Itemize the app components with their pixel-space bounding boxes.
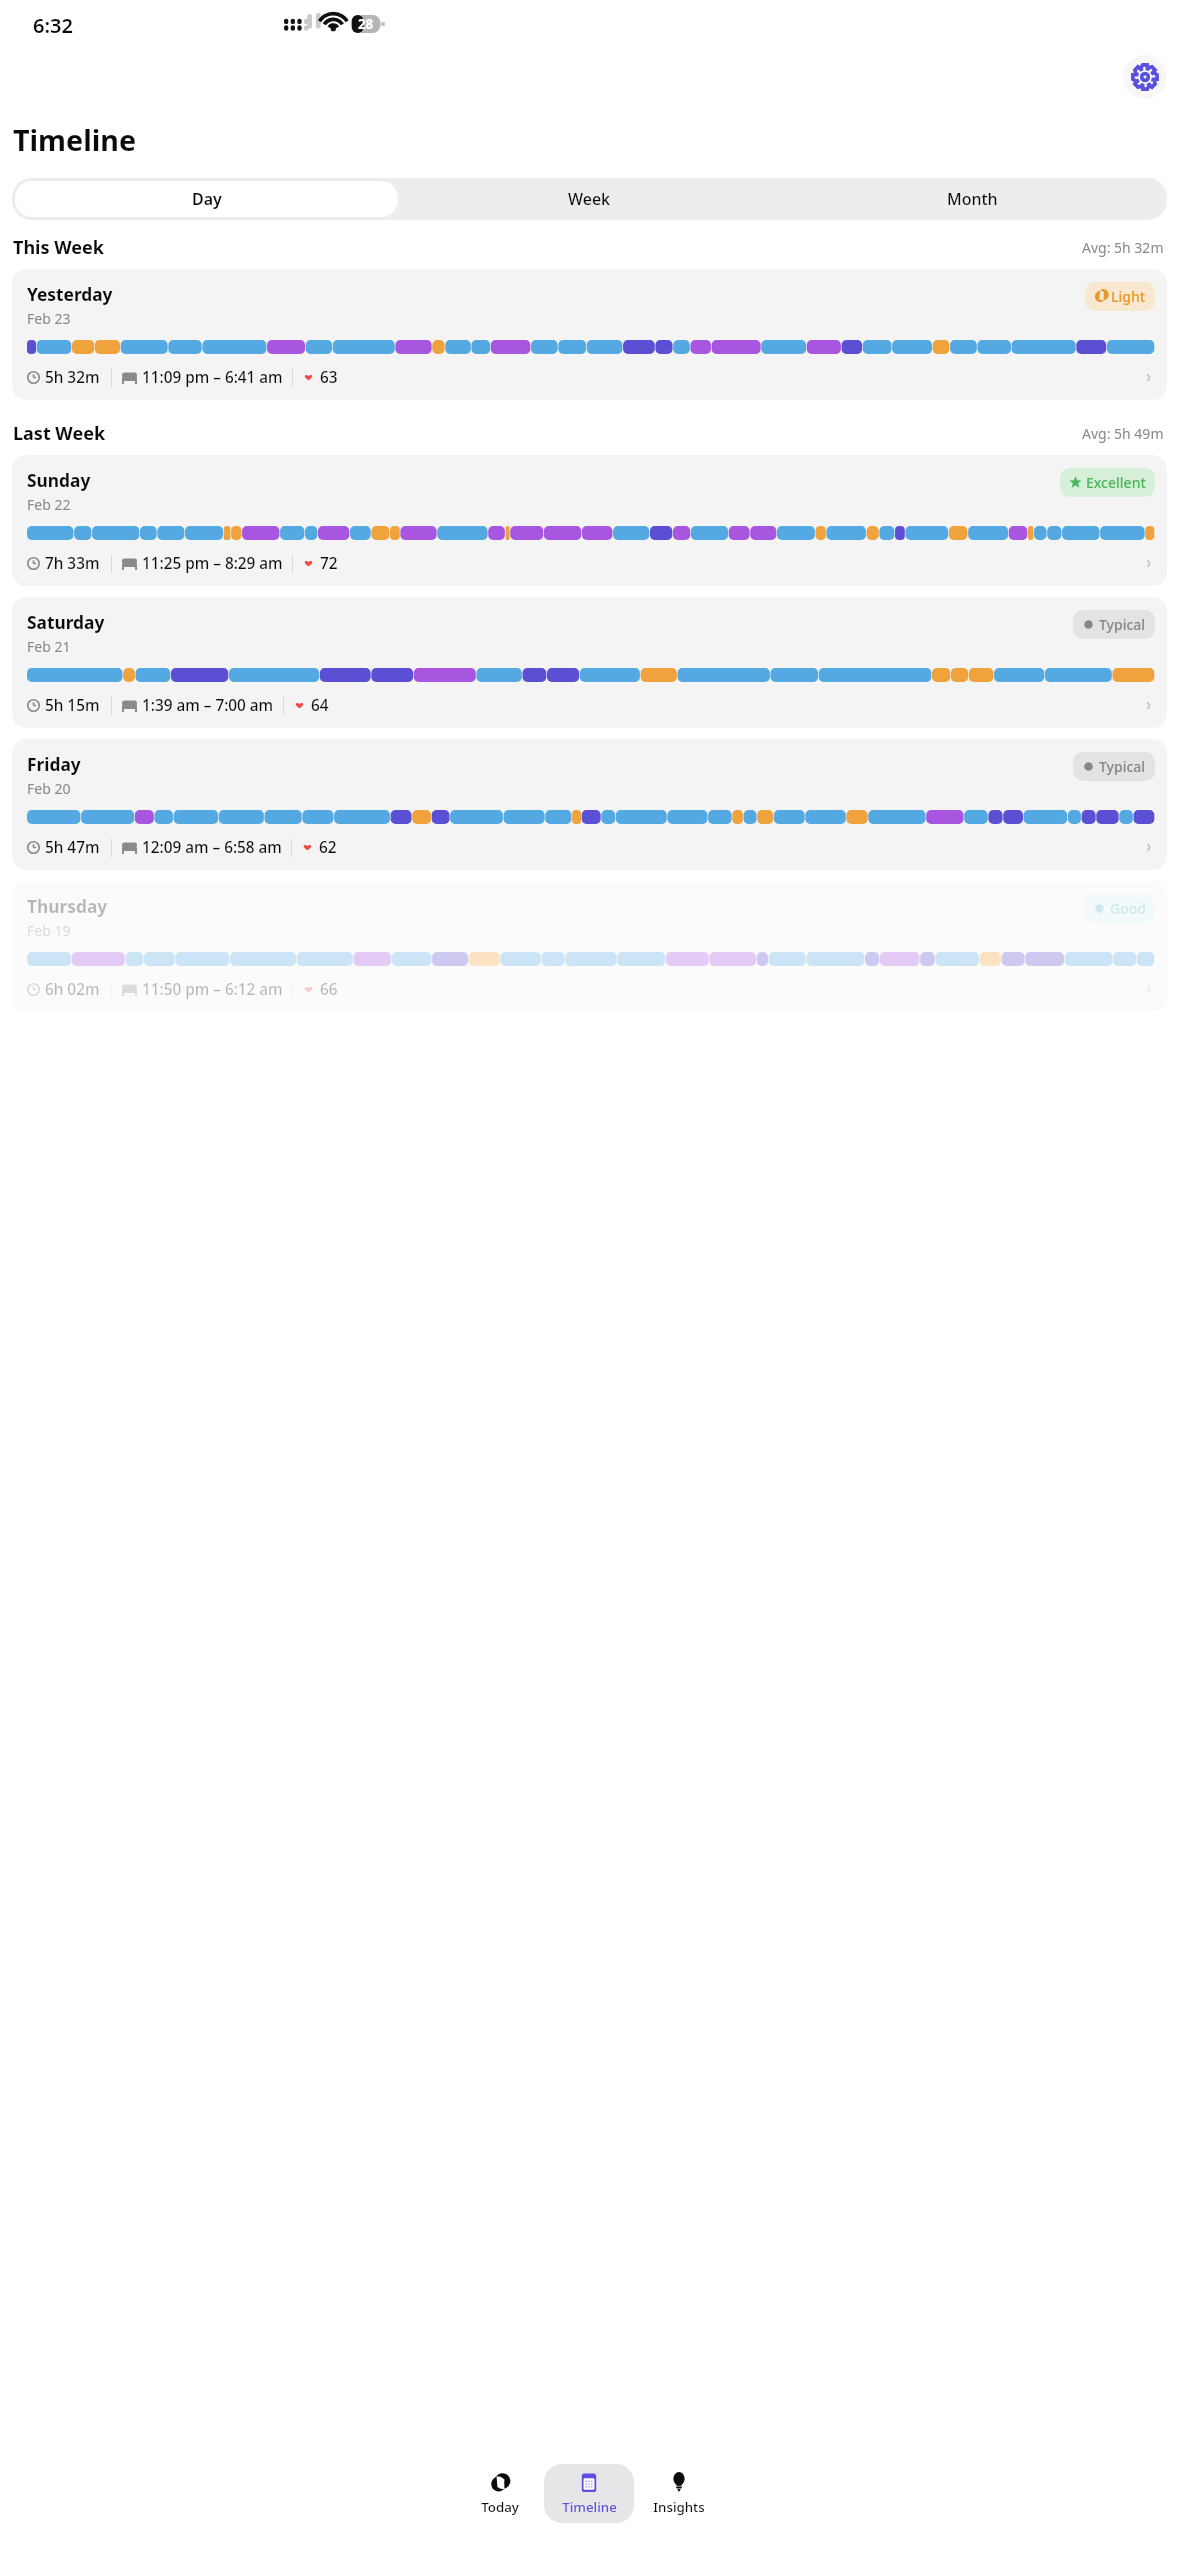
- staticText: 5h 47m: [45, 837, 100, 858]
- button[interactable]: Sunday: [12, 455, 1167, 586]
- staticText: 72: [320, 553, 338, 574]
- staticText: Feb 22: [27, 495, 71, 514]
- staticText: Feb 19: [27, 921, 71, 940]
- staticText: Good: [1110, 899, 1146, 918]
- staticText: Feb 21: [27, 637, 71, 656]
- button[interactable]: Light: [1085, 282, 1155, 311]
- staticText: Yesterday: [27, 282, 113, 306]
- staticText: Avg: 5h 32m: [1082, 238, 1164, 257]
- button[interactable]: Timeline: [544, 2464, 634, 2523]
- button[interactable]: Yesterday: [12, 269, 1167, 400]
- button[interactable]: Excellent: [1060, 468, 1155, 497]
- button[interactable]: Settings: [1123, 55, 1167, 99]
- staticText: Timeline: [13, 120, 136, 159]
- staticText: Day: [192, 188, 222, 210]
- staticText: Month: [947, 188, 998, 210]
- button[interactable]: Friday: [12, 739, 1167, 870]
- button[interactable]: Month: [781, 181, 1164, 217]
- staticText: 6h 02m: [45, 979, 100, 1000]
- staticText: 28: [358, 15, 374, 33]
- staticText: 62: [319, 837, 337, 858]
- button[interactable]: Typical: [1073, 752, 1155, 781]
- staticText: Thursday: [27, 894, 108, 918]
- staticText: Timeline: [562, 2498, 617, 2516]
- staticText: Last Week: [13, 421, 106, 446]
- button[interactable]: Good: [1084, 894, 1155, 923]
- staticText: Feb 23: [27, 309, 71, 328]
- button[interactable]: Day: [15, 181, 398, 217]
- staticText: 5h 32m: [45, 367, 100, 388]
- staticText: 5h 15m: [45, 695, 100, 716]
- staticText: 11:25 pm – 8:29 am: [142, 553, 283, 574]
- staticText: 63: [320, 367, 338, 388]
- staticText: 11:09 pm – 6:41 am: [142, 367, 283, 388]
- staticText: 12:09 am – 6:58 am: [142, 837, 282, 858]
- staticText: Insights: [653, 2498, 705, 2516]
- staticText: Friday: [27, 752, 81, 776]
- staticText: Avg: 5h 49m: [1082, 424, 1164, 443]
- button[interactable]: Insights: [634, 2464, 724, 2523]
- staticText: Light: [1111, 287, 1146, 306]
- staticText: 7h 33m: [45, 553, 100, 574]
- staticText: Typical: [1099, 615, 1146, 634]
- button[interactable]: Week: [398, 181, 781, 217]
- button[interactable]: Saturday: [12, 597, 1167, 728]
- staticText: Today: [481, 2498, 519, 2516]
- staticText: 66: [320, 979, 338, 1000]
- button[interactable]: Today: [455, 2464, 544, 2523]
- staticText: 64: [311, 695, 329, 716]
- staticText: Excellent: [1086, 473, 1146, 492]
- staticText: 1:39 am – 7:00 am: [142, 695, 274, 716]
- staticText: This Week: [13, 235, 104, 260]
- staticText: Week: [568, 188, 611, 210]
- staticText: Sunday: [27, 468, 91, 492]
- button[interactable]: Typical: [1073, 610, 1155, 639]
- staticText: Feb 20: [27, 779, 71, 798]
- staticText: 11:50 pm – 6:12 am: [142, 979, 283, 1000]
- staticText: Typical: [1099, 757, 1146, 776]
- staticText: 6:32: [33, 12, 73, 39]
- button[interactable]: Thursday: [12, 881, 1167, 1012]
- staticText: Saturday: [27, 610, 105, 634]
